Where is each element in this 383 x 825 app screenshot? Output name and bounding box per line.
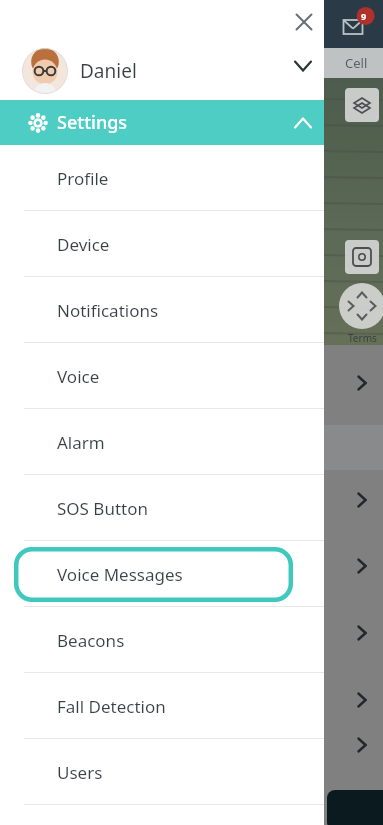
staticText: Fall Detection (57, 695, 166, 718)
button[interactable]: Open (350, 371, 374, 395)
button[interactable]: Messages (336, 6, 374, 44)
staticText: Beacons (57, 629, 125, 652)
button[interactable]: SOS Button (0, 475, 324, 541)
staticText: Profile (57, 167, 109, 190)
button[interactable]: Close (290, 8, 318, 36)
staticText: Voice (57, 365, 100, 388)
button[interactable]: Open (350, 554, 374, 578)
button[interactable]: Device (0, 211, 324, 277)
button[interactable]: Open (350, 733, 374, 757)
button[interactable]: Open (350, 688, 374, 712)
staticText: Alarm (57, 431, 105, 454)
staticText: Terms (348, 331, 377, 345)
button[interactable]: Pan (339, 283, 383, 329)
button[interactable]: Fall Detection (0, 673, 324, 739)
staticText: Users (57, 761, 103, 784)
staticText: Device (57, 233, 110, 256)
button[interactable]: Open (350, 488, 374, 512)
button[interactable]: Profile photo (22, 48, 68, 94)
staticText: 9 (361, 10, 367, 22)
button[interactable]: Beacons (0, 607, 324, 673)
button[interactable]: Voice (0, 343, 324, 409)
button[interactable]: Alarm (0, 409, 324, 475)
button[interactable]: Map layers (345, 88, 379, 122)
button[interactable]: Expand account (289, 52, 317, 80)
staticText: Notifications (57, 299, 159, 322)
staticText: SOS Button (57, 497, 148, 520)
button[interactable]: Voice Messages (0, 541, 324, 607)
staticText: Daniel (80, 58, 137, 84)
staticText: Voice Messages (57, 563, 183, 586)
staticText: Cell (345, 54, 368, 72)
button[interactable]: Profile (0, 145, 324, 211)
button[interactable]: Notifications (0, 277, 324, 343)
button[interactable]: Collapse settings (289, 109, 317, 137)
staticText: Settings (57, 110, 128, 135)
button[interactable]: Settings (0, 100, 324, 145)
button[interactable]: Recenter (345, 240, 379, 274)
button[interactable]: Users (0, 739, 324, 805)
button[interactable]: Open (350, 621, 374, 645)
